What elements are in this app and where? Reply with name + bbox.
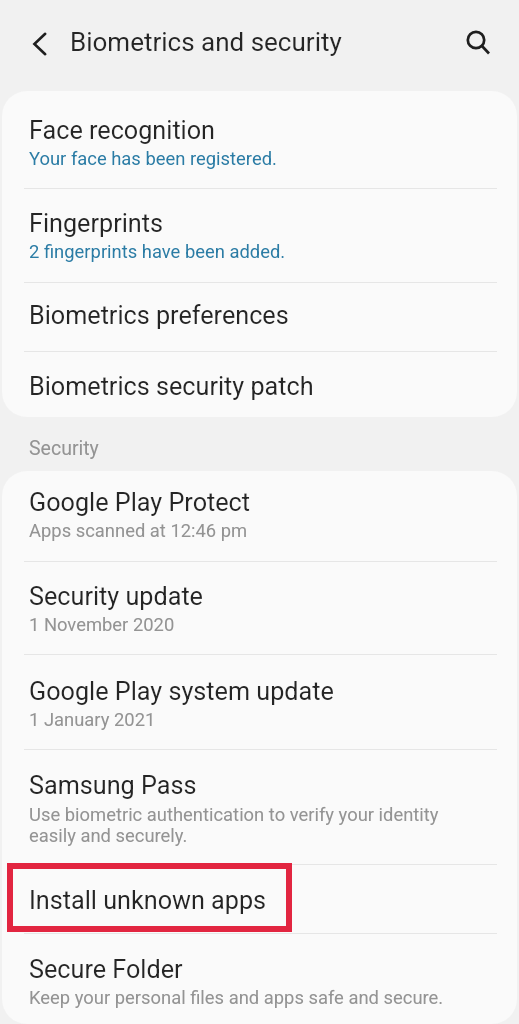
- staticText: Apps scanned at 12:46 pm: [29, 520, 248, 541]
- staticText: Biometrics and security: [70, 27, 342, 57]
- button[interactable]: Google Play system update: [2, 655, 517, 749]
- staticText: 2 fingerprints have been added.: [29, 241, 286, 262]
- staticText: Google Play system update: [29, 677, 334, 706]
- staticText: Install unknown apps: [29, 886, 267, 915]
- button[interactable]: Biometrics preferences: [2, 283, 517, 351]
- button[interactable]: Google Play Protect: [2, 471, 517, 561]
- staticText: Secure Folder: [29, 955, 183, 984]
- staticText: Biometrics preferences: [29, 301, 289, 330]
- staticText: Biometrics security patch: [29, 372, 314, 401]
- staticText: Samsung Pass: [29, 771, 197, 800]
- staticText: Your face has been registered.: [29, 148, 277, 169]
- button[interactable]: Biometrics security patch: [2, 352, 517, 417]
- staticText: Fingerprints: [29, 209, 163, 238]
- staticText: Use biometric authentication to verify y…: [29, 804, 439, 846]
- button[interactable]: Install unknown apps: [2, 865, 517, 933]
- button[interactable]: Security update: [2, 562, 517, 654]
- button[interactable]: Fingerprints: [2, 189, 517, 282]
- staticText: Face recognition: [29, 116, 216, 145]
- button[interactable]: Samsung Pass: [2, 750, 517, 864]
- staticText: Security: [29, 437, 99, 460]
- button[interactable]: Face recognition: [2, 91, 517, 188]
- staticText: Security update: [29, 582, 203, 611]
- staticText: Google Play Protect: [29, 488, 251, 517]
- button[interactable]: Secure Folder: [2, 934, 517, 1024]
- staticText: Keep your personal files and apps safe a…: [29, 987, 444, 1008]
- button[interactable]: Search: [457, 22, 505, 70]
- staticText: 1 January 2021: [29, 709, 156, 730]
- staticText: 1 November 2020: [29, 614, 175, 635]
- button[interactable]: Navigate up: [16, 22, 64, 70]
